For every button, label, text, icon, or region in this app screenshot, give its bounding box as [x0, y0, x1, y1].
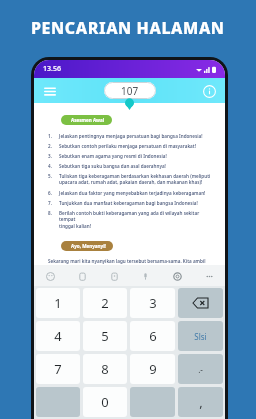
staticText: Sebutkan enam agama yang resmi di Indone…: [59, 153, 167, 159]
staticText: 2.: [48, 143, 52, 149]
button[interactable]: More options: [200, 267, 218, 285]
staticText: 8.: [48, 210, 52, 216]
button[interactable]: Menu: [42, 83, 58, 99]
staticText: PENCARIAN HALAMAN: [31, 17, 225, 39]
button[interactable]: .-: [178, 354, 223, 384]
staticText: 7: [54, 360, 62, 378]
staticText: 1.: [48, 133, 52, 139]
staticText: .-: [198, 364, 203, 375]
button[interactable]: 9: [130, 354, 175, 384]
button[interactable]: 2: [83, 288, 127, 318]
button[interactable]: Voice input: [136, 267, 154, 285]
button[interactable]: 107: [104, 82, 156, 99]
staticText: Ayo, Menyanyi!: [71, 243, 106, 249]
staticText: Asesmen Awal: [71, 117, 105, 123]
staticText: Berilah contoh bukti keberagaman yang ad…: [59, 210, 213, 230]
staticText: 1: [54, 294, 62, 312]
button[interactable]: 8: [83, 354, 127, 384]
staticText: 3: [149, 294, 157, 312]
button[interactable]: Emoji: [41, 267, 59, 285]
button[interactable]: 4: [36, 321, 80, 351]
staticText: 6.: [48, 190, 52, 196]
staticText: 3.: [48, 153, 52, 159]
staticText: Jelaskan dua faktor yang menyebabkan ter…: [59, 190, 206, 196]
button[interactable]: Slsi: [178, 321, 223, 351]
button[interactable]: ,: [178, 387, 223, 417]
staticText: Slsi: [194, 331, 207, 342]
button[interactable]: Info: [201, 83, 217, 99]
button[interactable]: 7: [36, 354, 80, 384]
staticText: 9: [149, 360, 157, 378]
staticText: Sebutkan tiga suku bangsa dan asal daera…: [59, 163, 166, 169]
staticText: Sebutkan contoh perilaku menjaga persatu…: [59, 143, 196, 149]
staticText: 0: [101, 393, 109, 411]
button[interactable]: 5: [83, 321, 127, 351]
staticText: 4.: [48, 163, 52, 169]
staticText: Tunjukkan dua manfaat keberagaman bagi b…: [59, 200, 198, 206]
button[interactable]: Clipboard: [73, 267, 91, 285]
button[interactable]: Asesmen Awal: [48, 113, 112, 126]
staticText: 7.: [48, 200, 52, 206]
staticText: 13.56: [43, 64, 61, 74]
staticText: 6: [149, 327, 157, 345]
staticText: 5.: [48, 173, 52, 179]
staticText: Tuliskan tiga keberagaman berdasarkan ke…: [59, 173, 211, 186]
staticText: 2: [101, 294, 109, 312]
button[interactable]: Settings: [168, 267, 186, 285]
staticText: 4: [54, 327, 62, 345]
staticText: ,: [199, 393, 203, 411]
staticText: Sekarang mari kita nyanyikan lagu terseb…: [48, 258, 213, 265]
staticText: 107: [121, 84, 139, 98]
staticText: 5: [101, 327, 109, 345]
button[interactable]: 6: [130, 321, 175, 351]
button[interactable]: Ayo, Menyanyi!: [48, 239, 113, 252]
button[interactable]: 3: [130, 288, 175, 318]
button[interactable]: [178, 288, 223, 318]
button[interactable]: 1: [36, 288, 80, 318]
button[interactable]: 0: [83, 387, 127, 417]
button[interactable]: Stickers: [105, 267, 123, 285]
staticText: Jelaskan pentingnya menjaga persatuan ba…: [59, 133, 203, 139]
staticText: 8: [101, 360, 109, 378]
